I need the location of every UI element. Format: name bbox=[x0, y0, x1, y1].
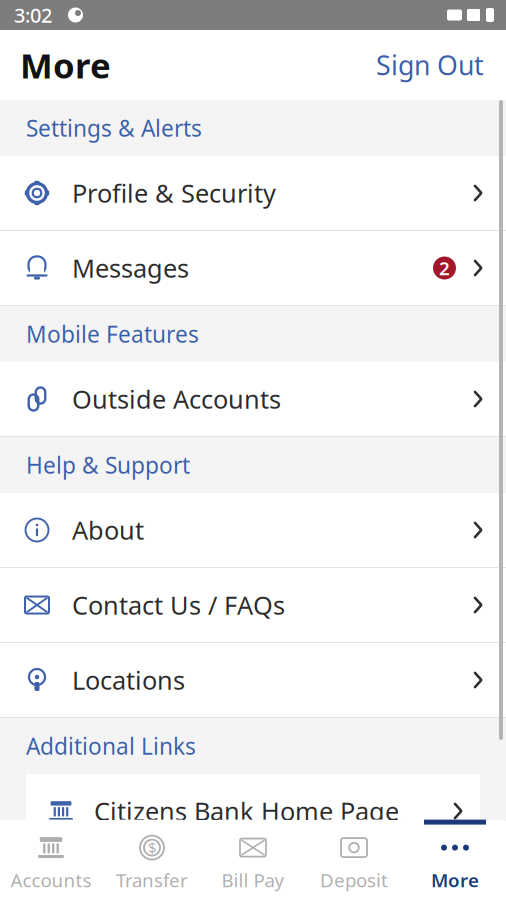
staticText: Additional Links bbox=[26, 731, 196, 761]
staticText: Locations bbox=[72, 663, 185, 697]
staticText: Accounts bbox=[10, 868, 91, 892]
button[interactable]: Outside Accounts bbox=[0, 362, 506, 437]
staticText: $ bbox=[148, 838, 156, 857]
button[interactable]: Sign Out bbox=[366, 39, 494, 91]
button[interactable]: Bill Pay bbox=[202, 820, 303, 900]
button[interactable]: About bbox=[0, 493, 506, 568]
staticText: Transfer bbox=[116, 868, 188, 892]
staticText: Settings & Alerts bbox=[26, 113, 202, 143]
staticText: Citizens Bank Home Page bbox=[94, 794, 399, 828]
button[interactable]: Messages bbox=[0, 231, 506, 306]
staticText: Outside Accounts bbox=[72, 382, 281, 416]
button[interactable]: Locations bbox=[0, 643, 506, 718]
staticText: Messages bbox=[72, 251, 189, 285]
button[interactable]: Citizens Bank Home Page bbox=[26, 774, 480, 848]
staticText: Sign Out bbox=[376, 47, 484, 83]
button[interactable]: More bbox=[404, 820, 505, 900]
staticText: More bbox=[431, 868, 479, 892]
button[interactable]: Accounts bbox=[0, 820, 101, 900]
button[interactable]: Contact Us / FAQs bbox=[0, 568, 506, 643]
staticText: 2 bbox=[439, 256, 450, 280]
button[interactable]: $ bbox=[101, 820, 202, 900]
staticText: Deposit bbox=[320, 868, 388, 892]
staticText: 3:02 bbox=[14, 2, 52, 28]
staticText: Help & Support bbox=[26, 450, 190, 480]
staticText: Mobile Features bbox=[26, 319, 199, 349]
staticText: About bbox=[72, 513, 144, 547]
button[interactable]: Deposit bbox=[303, 820, 404, 900]
staticText: Profile & Security bbox=[72, 176, 276, 210]
staticText: Bill Pay bbox=[221, 868, 284, 892]
button[interactable]: Profile & Security bbox=[0, 156, 506, 231]
staticText: Contact Us / FAQs bbox=[72, 588, 285, 622]
staticText: More bbox=[20, 42, 111, 88]
